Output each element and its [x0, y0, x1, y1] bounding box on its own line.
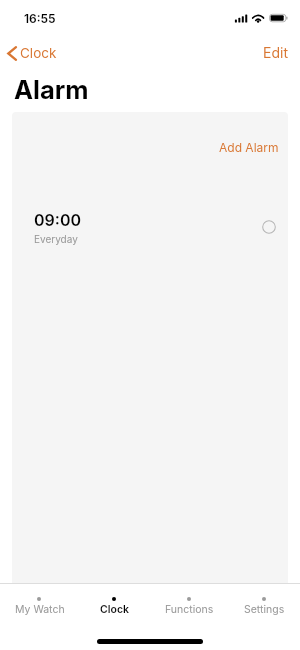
- staticText: Everyday: [34, 233, 78, 245]
- staticText: Edit: [263, 44, 288, 61]
- staticText: Alarm: [14, 74, 89, 105]
- button[interactable]: Toggle alarm on or off: [258, 216, 280, 238]
- staticText: Functions: [165, 603, 214, 616]
- staticText: Add Alarm: [219, 140, 279, 155]
- button[interactable]: Settings: [227, 591, 300, 619]
- button[interactable]: 09:00: [12, 199, 288, 255]
- staticText: 09:00: [34, 210, 81, 229]
- button[interactable]: Clock: [77, 591, 152, 619]
- button[interactable]: Edit: [249, 42, 300, 63]
- staticText: Settings: [244, 603, 285, 616]
- button[interactable]: Clock: [1, 43, 67, 63]
- staticText: My Watch: [15, 603, 65, 616]
- button[interactable]: Add Alarm: [207, 132, 288, 163]
- button[interactable]: My Watch: [2, 591, 77, 619]
- staticText: Clock: [20, 45, 57, 61]
- button[interactable]: Functions: [152, 591, 227, 619]
- staticText: 16:55: [24, 11, 56, 26]
- staticText: Clock: [100, 603, 129, 616]
